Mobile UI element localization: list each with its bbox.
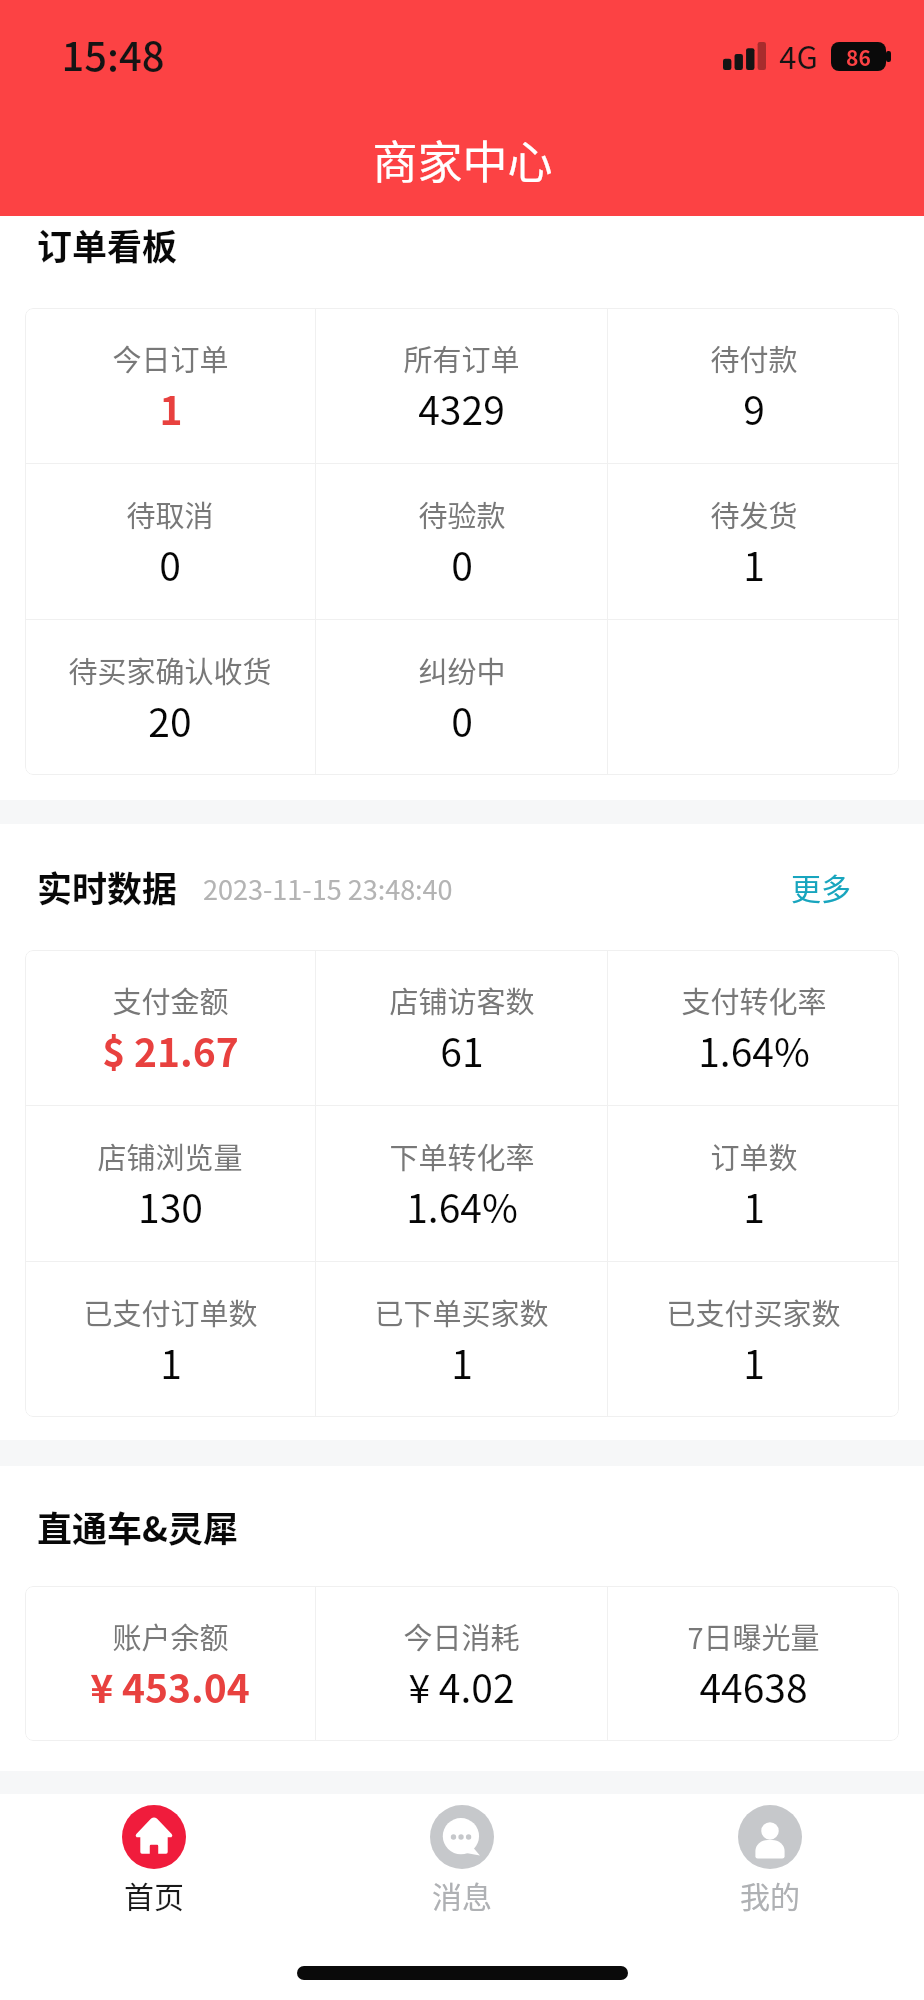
button[interactable]: 待验款 — [316, 464, 607, 619]
staticText: 订单数 — [710, 1135, 798, 1177]
staticText: 0 — [451, 536, 473, 592]
staticText: 86 — [846, 42, 871, 71]
button[interactable]: 7日曝光量 — [608, 1586, 899, 1741]
staticText: 130 — [138, 1178, 203, 1234]
staticText: 今日订单 — [112, 337, 229, 379]
staticText: 1 — [159, 380, 183, 436]
button[interactable]: 我的 — [616, 1794, 924, 1916]
staticText: 直通车&灵犀 — [37, 1501, 238, 1552]
staticText: 待发货 — [710, 493, 798, 535]
button[interactable]: 已支付订单数 — [25, 1262, 315, 1417]
staticText: 15:48 — [61, 25, 165, 83]
staticText: 今日消耗 — [403, 1615, 520, 1657]
staticText: 44638 — [699, 1658, 808, 1714]
button[interactable]: 待付款 — [608, 308, 899, 463]
staticText: 更多 — [791, 865, 851, 908]
staticText: 待付款 — [710, 337, 798, 379]
staticText: 支付转化率 — [681, 979, 827, 1021]
button[interactable]: 待发货 — [608, 464, 899, 619]
staticText: 2023-11-15 23:48:40 — [203, 869, 453, 908]
staticText: 商家中心 — [372, 127, 553, 192]
staticText: 1 — [743, 536, 765, 592]
staticText: 1.64% — [698, 1022, 810, 1078]
button[interactable]: 店铺访客数 — [316, 950, 607, 1105]
staticText: 纠纷中 — [418, 649, 506, 691]
button[interactable]: 下单转化率 — [316, 1106, 607, 1261]
button[interactable]: 今日消耗 — [316, 1586, 607, 1741]
staticText: ¥ 453.04 — [90, 1658, 250, 1714]
staticText: $ 21.67 — [102, 1022, 239, 1078]
staticText: 店铺浏览量 — [97, 1135, 243, 1177]
staticText: 1 — [743, 1334, 765, 1390]
button[interactable]: 所有订单 — [316, 308, 607, 463]
staticText: 首页 — [124, 1873, 184, 1916]
button[interactable]: 更多 — [787, 861, 855, 912]
staticText: 待验款 — [418, 493, 506, 535]
staticText: 4329 — [418, 380, 505, 436]
staticText: 20 — [148, 692, 192, 748]
staticText: 消息 — [432, 1873, 492, 1916]
button[interactable]: 支付金额 — [25, 950, 315, 1105]
button[interactable]: 首页 — [0, 1794, 308, 1916]
staticText: 已下单买家数 — [374, 1291, 549, 1333]
staticText: 待买家确认收货 — [68, 649, 272, 691]
staticText: 1 — [743, 1178, 765, 1234]
button[interactable]: 支付转化率 — [608, 950, 899, 1105]
staticText: 实时数据 — [37, 861, 178, 912]
staticText: 61 — [440, 1022, 484, 1078]
button[interactable]: 已下单买家数 — [316, 1262, 607, 1417]
staticText: 4G — [779, 33, 818, 78]
button[interactable]: 待买家确认收货 — [25, 620, 315, 775]
staticText: 1 — [160, 1334, 182, 1390]
button[interactable]: 已支付买家数 — [608, 1262, 899, 1417]
staticText: 下单转化率 — [389, 1135, 535, 1177]
button[interactable]: 消息 — [308, 1794, 616, 1916]
staticText: 账户余额 — [112, 1615, 229, 1657]
staticText: 0 — [159, 536, 181, 592]
staticText: 支付金额 — [112, 979, 229, 1021]
button[interactable]: 店铺浏览量 — [25, 1106, 315, 1261]
staticText: 我的 — [740, 1873, 800, 1916]
staticText: 9 — [743, 380, 765, 436]
button[interactable]: 纠纷中 — [316, 620, 607, 775]
staticText: 所有订单 — [403, 337, 520, 379]
staticText: 订单看板 — [37, 219, 178, 270]
staticText: 已支付买家数 — [666, 1291, 841, 1333]
staticText: 待取消 — [126, 493, 214, 535]
staticText: 7日曝光量 — [687, 1615, 820, 1657]
button[interactable]: 订单数 — [608, 1106, 899, 1261]
staticText: 0 — [451, 692, 473, 748]
button[interactable]: 今日订单 — [25, 308, 315, 463]
button[interactable]: 待取消 — [25, 464, 315, 619]
staticText: 1.64% — [406, 1178, 518, 1234]
staticText: 店铺访客数 — [389, 979, 535, 1021]
staticText: 已支付订单数 — [83, 1291, 258, 1333]
staticText: ¥ 4.02 — [408, 1658, 515, 1714]
button[interactable]: 账户余额 — [25, 1586, 315, 1741]
staticText: 1 — [451, 1334, 473, 1390]
